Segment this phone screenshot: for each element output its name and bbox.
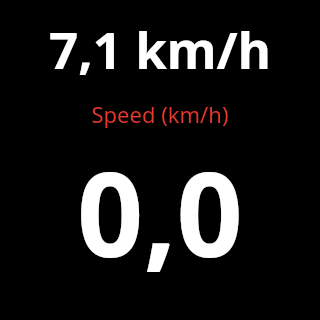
staticText: 0,0 — [0, 133, 320, 291]
staticText: 7,1 km/h — [0, 14, 320, 83]
staticText: Speed (km/h) — [0, 99, 320, 129]
